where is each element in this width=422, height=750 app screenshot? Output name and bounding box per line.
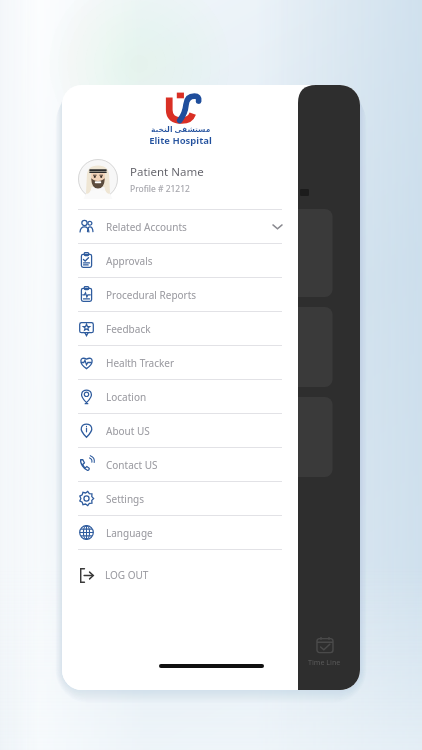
staticText: Approvals — [106, 254, 153, 268]
button[interactable]: Feedback — [62, 312, 298, 345]
button[interactable]: Health Tracker — [62, 346, 298, 379]
staticText: Time Line — [308, 658, 341, 668]
staticText: Settings — [106, 492, 145, 506]
button[interactable]: Location — [62, 380, 298, 413]
staticText: About US — [106, 424, 150, 438]
button[interactable]: Procedural Reports — [62, 278, 298, 311]
staticText: LOG OUT — [105, 568, 149, 582]
button[interactable]: Settings — [62, 482, 298, 515]
staticText: Health Tracker — [106, 356, 175, 370]
staticText: Contact US — [106, 458, 158, 472]
button[interactable]: Contact US — [62, 448, 298, 481]
button[interactable]: Approvals — [62, 244, 298, 277]
staticText: Procedural Reports — [106, 288, 197, 302]
staticText: Elite Hospital — [149, 134, 212, 147]
button[interactable]: LOG OUT — [62, 560, 298, 590]
staticText: Language — [106, 526, 153, 540]
button[interactable]: Related Accounts — [62, 210, 298, 243]
staticText: Related Accounts — [106, 220, 187, 234]
button[interactable]: Patient Name — [62, 155, 298, 203]
button[interactable]: About US — [62, 414, 298, 447]
button[interactable]: Time Line — [306, 633, 343, 670]
staticText: Location — [106, 390, 147, 404]
staticText: Profile # 21212 — [130, 183, 190, 195]
button[interactable]: Language — [62, 516, 298, 549]
staticText: Feedback — [106, 322, 151, 336]
staticText: Patient Name — [130, 164, 204, 180]
staticText: مستشفى النخبة — [151, 124, 211, 134]
